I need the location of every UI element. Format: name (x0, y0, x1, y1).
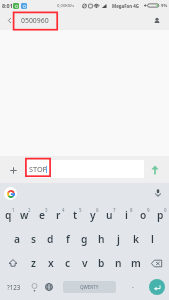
button[interactable]: Emoji (28, 275, 40, 299)
button[interactable]: f (59, 227, 76, 251)
button[interactable]: a (8, 227, 25, 251)
button[interactable]: s (25, 227, 42, 251)
button[interactable]: q (0, 203, 16, 227)
button[interactable]: Back (0, 11, 19, 30)
staticText: 2 (28, 207, 31, 213)
staticText: 0,00KB/s (57, 3, 75, 9)
staticText: 7 (113, 207, 116, 213)
staticText: i (125, 208, 128, 222)
button[interactable]: p (152, 203, 169, 227)
staticText: . (132, 281, 134, 291)
button[interactable]: Shift (0, 251, 25, 275)
button[interactable]: Contact info (147, 11, 166, 30)
staticText: x (48, 256, 54, 270)
button[interactable]: Send (145, 160, 165, 180)
staticText: 1 (12, 207, 15, 213)
staticText: q (5, 208, 12, 222)
staticText: 4 (62, 207, 65, 213)
staticText: f (66, 232, 70, 246)
staticText: o (140, 208, 147, 222)
staticText: 6 (96, 207, 99, 213)
button[interactable]: n (110, 251, 127, 275)
staticText: 9% (161, 3, 168, 9)
staticText: 8 (130, 207, 133, 213)
button[interactable]: h (93, 227, 110, 251)
staticText: 0 (164, 207, 167, 213)
staticText: 3 (45, 207, 48, 213)
button[interactable]: v (76, 251, 93, 275)
staticText: ?123 (7, 283, 21, 291)
staticText: k (133, 232, 139, 246)
staticText: MegaFon 4G (112, 3, 140, 9)
staticText: s (31, 232, 37, 246)
button[interactable]: u (101, 203, 118, 227)
button[interactable]: l (144, 227, 161, 251)
button[interactable]: Add attachment (3, 160, 23, 180)
button[interactable]: o (135, 203, 152, 227)
button[interactable]: r (50, 203, 67, 227)
staticText: 9 (147, 207, 150, 213)
staticText: p (157, 208, 164, 222)
button[interactable]: m (127, 251, 144, 275)
staticText: h (98, 232, 105, 246)
staticText: c (65, 256, 71, 270)
staticText: z (31, 256, 36, 270)
button[interactable]: k (127, 227, 144, 251)
button[interactable]: x (42, 251, 59, 275)
staticText: t (73, 208, 78, 222)
staticText: 8:01 (2, 2, 13, 9)
button[interactable]: ?123 (0, 275, 28, 299)
button[interactable]: g (76, 227, 93, 251)
staticText: n (115, 256, 122, 270)
button[interactable]: b (93, 251, 110, 275)
staticText: w (20, 208, 29, 222)
staticText: 0500960 (21, 16, 49, 25)
staticText: e (39, 208, 45, 222)
button[interactable]: i (118, 203, 135, 227)
staticText: j (117, 232, 120, 246)
button[interactable]: Backspace (144, 251, 169, 275)
button[interactable]: Voice input (151, 186, 165, 200)
staticText: v (82, 256, 88, 270)
staticText: l (151, 232, 154, 246)
button[interactable]: t (67, 203, 84, 227)
staticText: 5 (79, 207, 82, 213)
button[interactable]: z (25, 251, 42, 275)
button[interactable]: c (59, 251, 76, 275)
button[interactable]: y (84, 203, 101, 227)
button[interactable]: Google search (4, 187, 17, 200)
button[interactable]: w (16, 203, 33, 227)
staticText: g (81, 232, 88, 246)
staticText: u (106, 208, 113, 222)
staticText: b (98, 256, 105, 270)
staticText: d (47, 232, 54, 246)
button[interactable]: Enter (145, 275, 169, 299)
button[interactable]: e (33, 203, 50, 227)
staticText: QWERTY (80, 284, 99, 290)
staticText: r (56, 208, 61, 222)
button[interactable]: d (42, 227, 59, 251)
staticText: y (90, 208, 96, 222)
staticText: m (131, 256, 141, 270)
staticText: a (14, 232, 20, 246)
button[interactable]: Change language (40, 275, 58, 299)
button[interactable]: j (110, 227, 127, 251)
button[interactable]: STOP (27, 160, 144, 178)
staticText: STOP (29, 164, 48, 174)
button[interactable]: QWERTY (63, 281, 116, 293)
